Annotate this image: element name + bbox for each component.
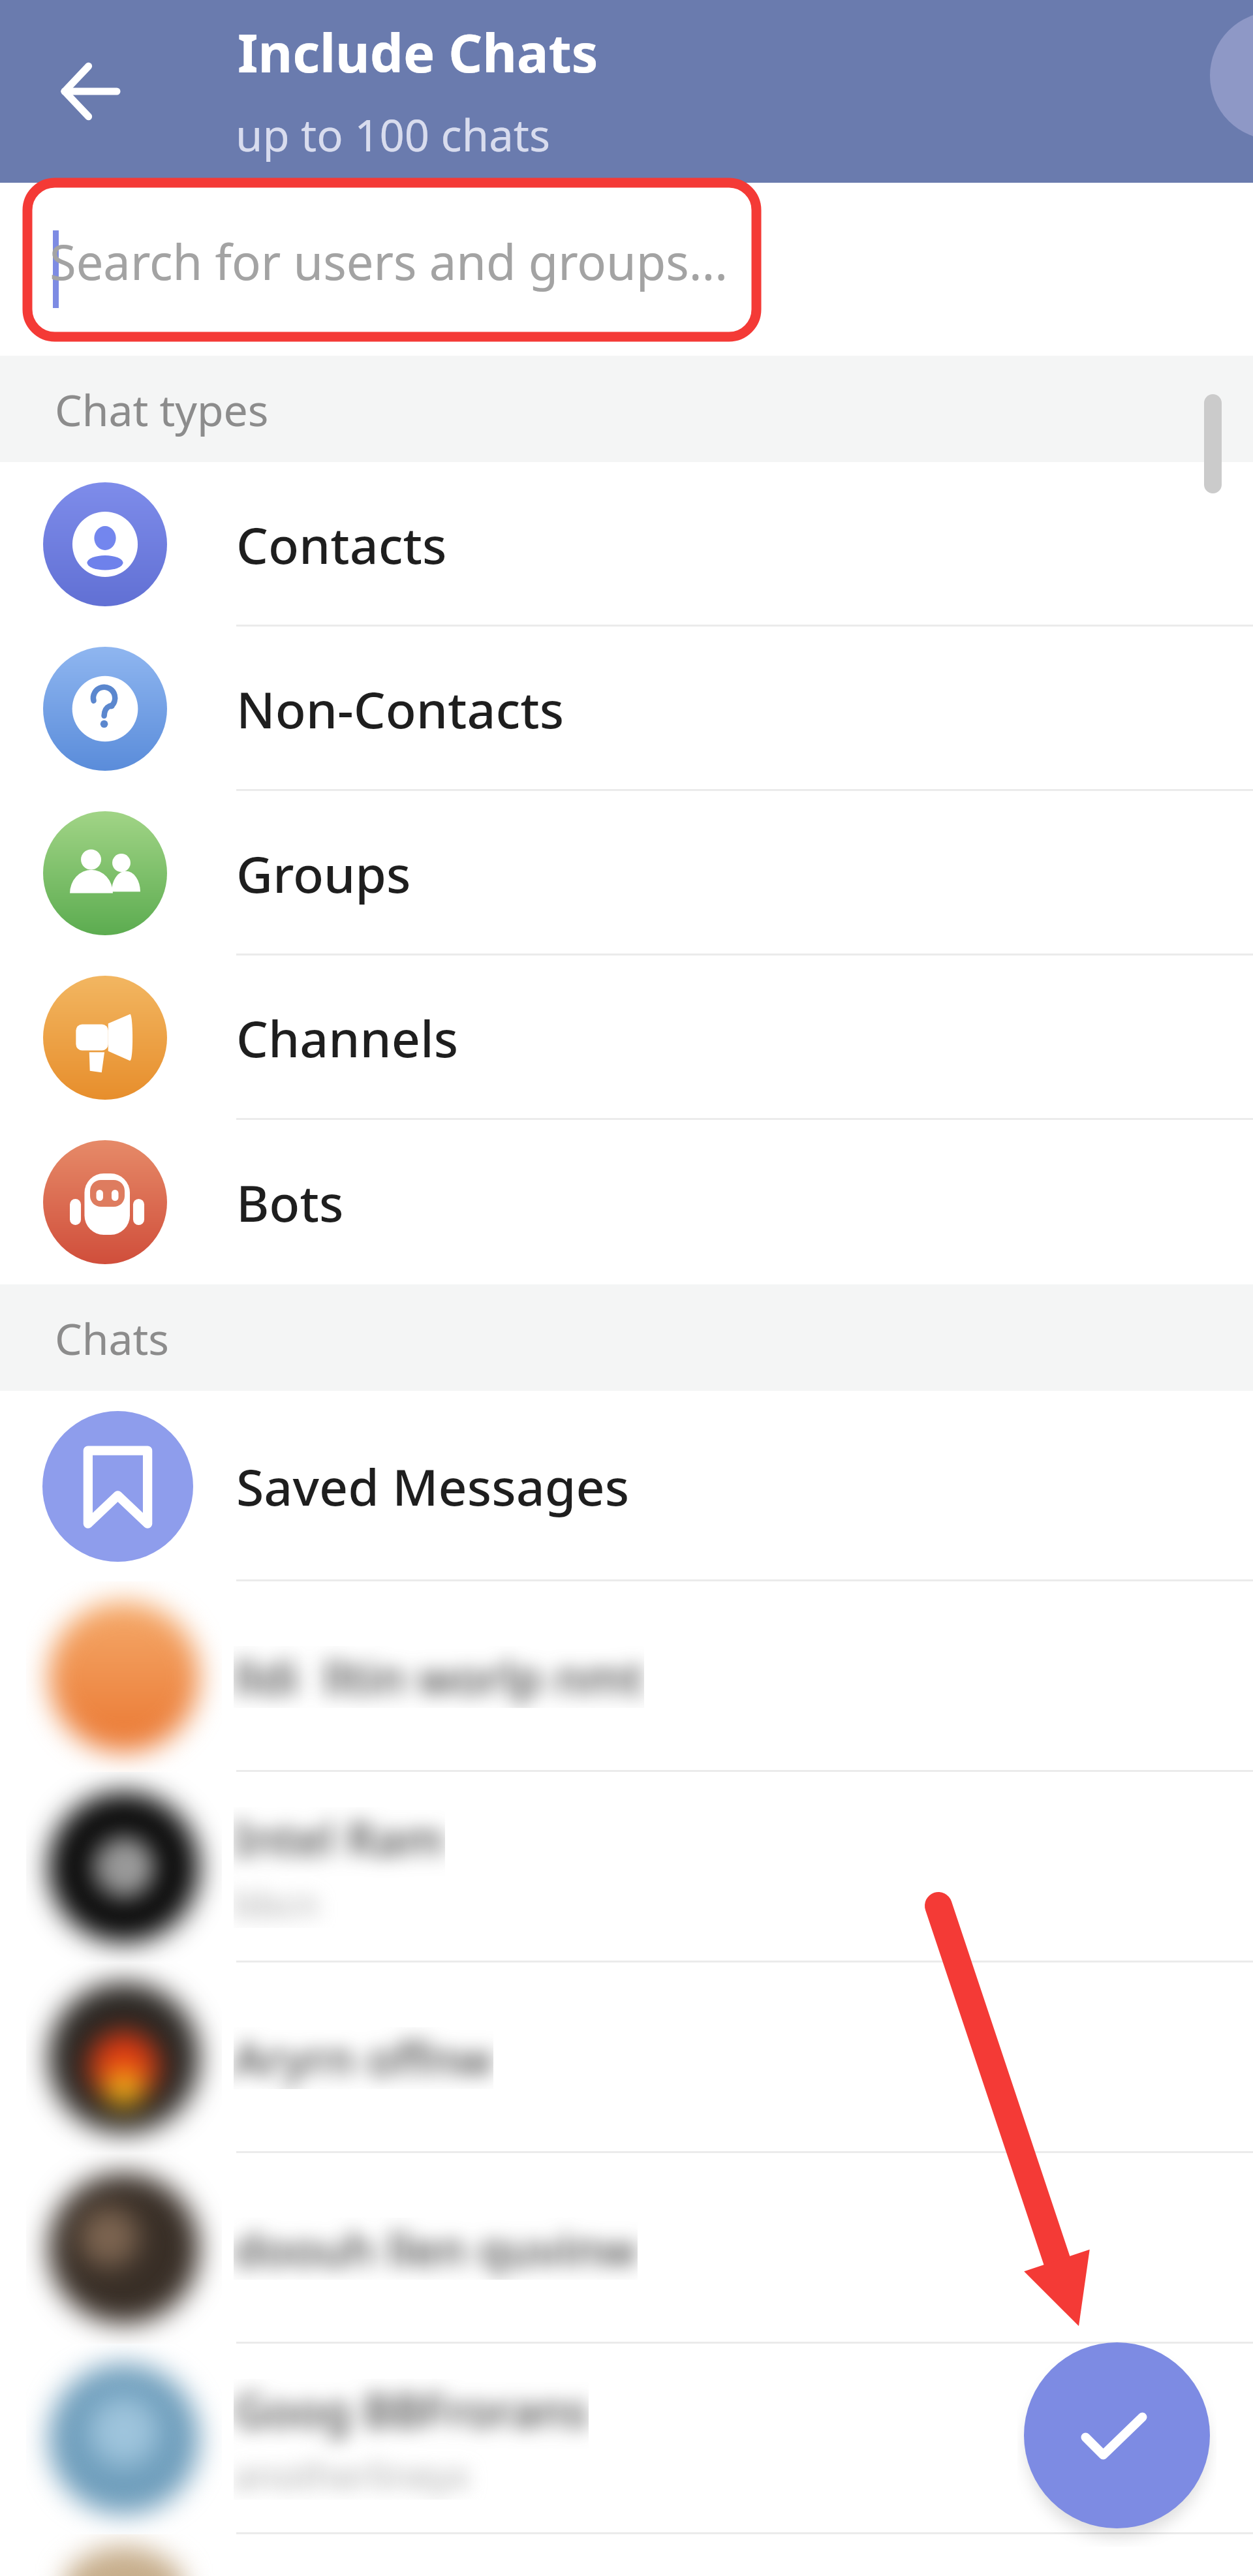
button[interactable]: Goog BBFrorans: [0, 2344, 1253, 2534]
button[interactable]: Done: [1024, 2342, 1210, 2528]
button[interactable]: Intel Ram: [0, 1772, 1253, 1963]
staticText: doouh llen quvinw: [234, 2218, 638, 2280]
staticText: up to 100 chats: [236, 104, 550, 164]
staticText: anotherlineyx: [234, 2450, 470, 2500]
button[interactable]: Saved Messages: [0, 1391, 1253, 1581]
staticText: Bots: [236, 1168, 344, 1237]
staticText: Intel Ram: [234, 1807, 445, 1869]
button[interactable]: Aryrn offnw: [0, 1963, 1253, 2153]
button[interactable]: Non-Contacts: [0, 627, 1253, 791]
staticText: lldi lltin worlp nmt: [234, 1646, 644, 1708]
button[interactable]: Contacts: [0, 462, 1253, 627]
staticText: Chats: [55, 1309, 169, 1367]
staticText: Contacts: [236, 510, 447, 579]
staticText: Search for users and groups...: [50, 228, 728, 294]
staticText: bbcn: [234, 1878, 319, 1928]
staticText: Goog BBFrorans: [234, 2379, 589, 2441]
staticText: Include Chats: [238, 16, 598, 87]
staticText: Aryrn offnw: [234, 2027, 493, 2089]
button[interactable]: Groups: [0, 791, 1253, 955]
button[interactable]: doouh llen quvinw: [0, 2153, 1253, 2344]
button[interactable]: Channels: [0, 955, 1253, 1120]
button[interactable]: [0, 2534, 1253, 2576]
staticText: Groups: [236, 839, 411, 908]
staticText: Channels: [236, 1004, 459, 1072]
staticText: Saved Messages: [236, 1452, 630, 1521]
button[interactable]: Back: [39, 39, 143, 144]
staticText: Chat types: [55, 380, 269, 439]
button[interactable]: lldi lltin worlp nmt: [0, 1581, 1253, 1772]
staticText: Non-Contacts: [236, 675, 565, 743]
button[interactable]: Bots: [0, 1120, 1253, 1284]
